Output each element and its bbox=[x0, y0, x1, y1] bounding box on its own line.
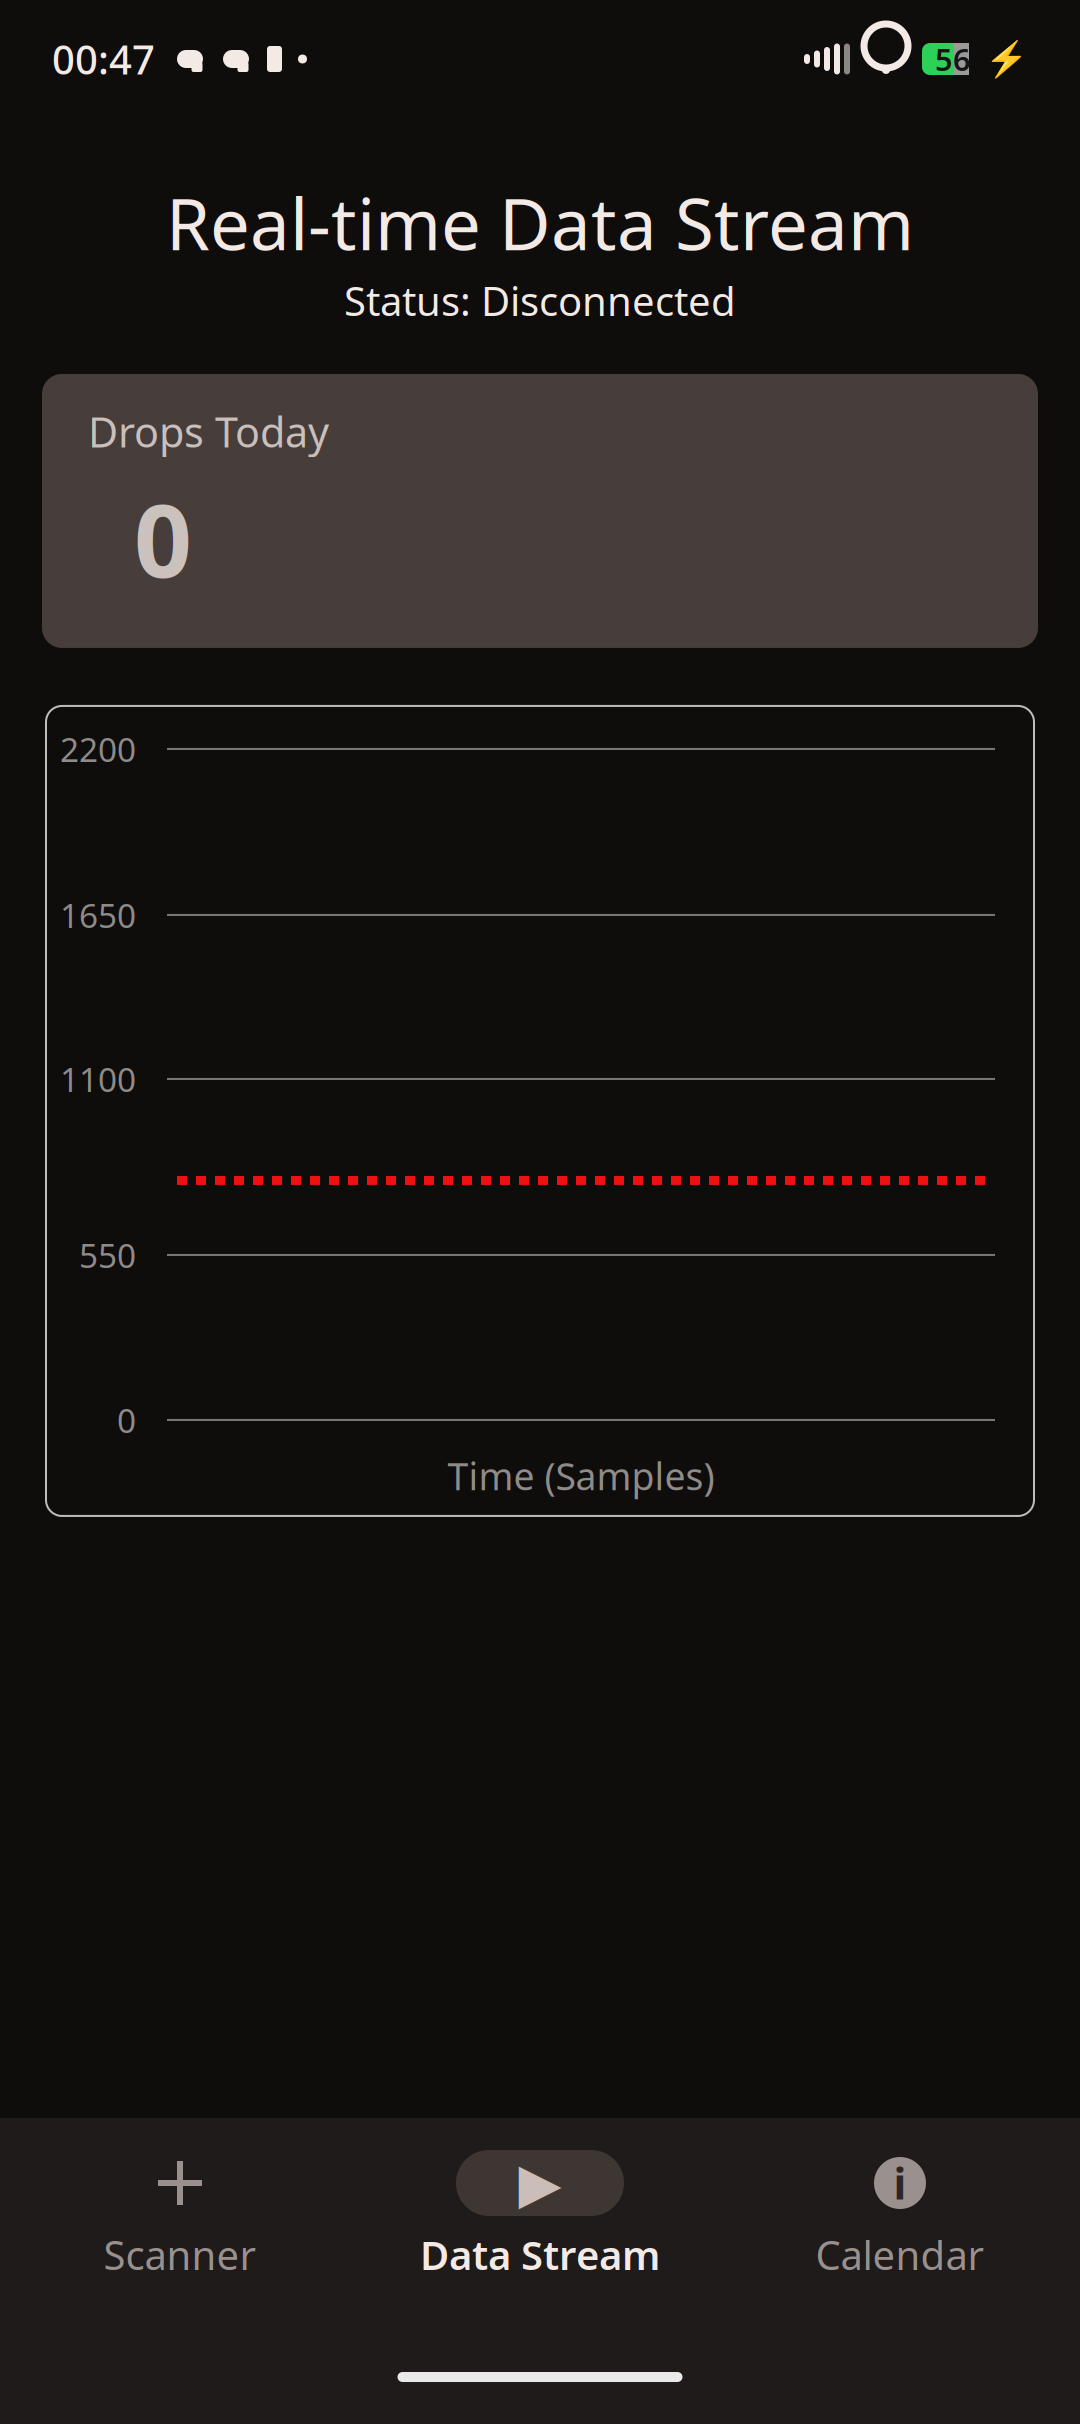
staticText: Calendar bbox=[815, 2228, 984, 2281]
button[interactable]: ▶ bbox=[360, 2140, 720, 2291]
staticText: 1100 bbox=[60, 1057, 136, 1101]
staticText: 00:47 bbox=[52, 32, 155, 85]
staticText: 1650 bbox=[60, 893, 136, 937]
staticText: Status: Disconnected bbox=[344, 274, 736, 327]
button[interactable]: Scanner bbox=[0, 2140, 360, 2291]
staticText: Time (Samples) bbox=[447, 1451, 714, 1501]
staticText: 2200 bbox=[60, 727, 136, 771]
staticText: Scanner bbox=[103, 2228, 256, 2281]
button[interactable]: i bbox=[720, 2140, 1080, 2291]
staticText: ▶ bbox=[518, 2151, 561, 2215]
staticText: 0 bbox=[134, 471, 192, 605]
staticText: 0 bbox=[117, 1398, 136, 1442]
staticText: i bbox=[893, 2155, 906, 2211]
staticText: Drops Today bbox=[88, 404, 329, 459]
staticText: 56 bbox=[935, 39, 971, 79]
staticText: Real-time Data Stream bbox=[166, 176, 914, 270]
staticText: Data Stream bbox=[420, 2228, 660, 2281]
staticText: 550 bbox=[79, 1233, 136, 1277]
staticText: ⚡ bbox=[985, 39, 1028, 79]
